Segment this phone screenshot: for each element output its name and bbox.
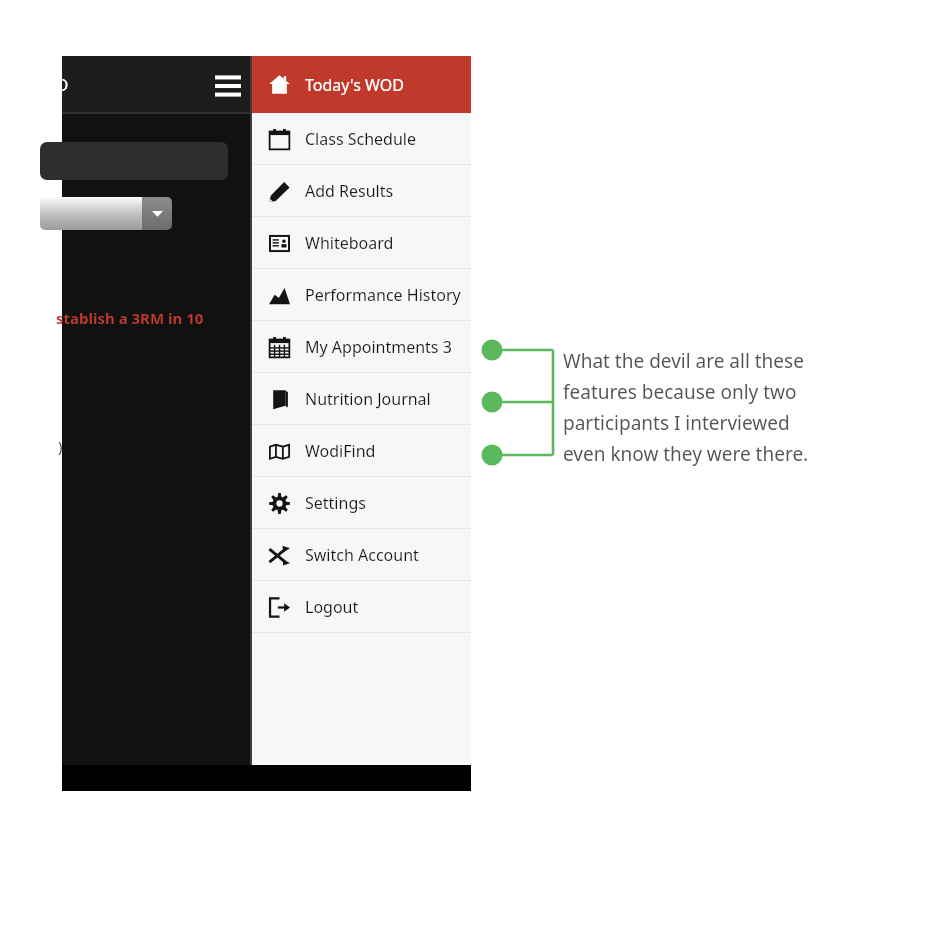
button[interactable]: WodiFind	[252, 425, 471, 477]
staticText: Performance History	[305, 284, 461, 306]
button[interactable]: Whiteboard	[252, 217, 471, 269]
button[interactable]: Add Results	[252, 165, 471, 217]
button[interactable]	[40, 142, 228, 180]
staticText: Class Schedule	[305, 128, 416, 150]
staticText: What the devil are all these features be…	[563, 348, 825, 467]
staticText: My Appointments 3	[305, 336, 452, 358]
staticText: Add Results	[305, 180, 394, 202]
staticText: Switch Account	[305, 544, 419, 566]
button[interactable]: Nutrition Journal	[252, 373, 471, 425]
staticText: D	[56, 73, 69, 96]
staticText: Logout	[305, 596, 359, 618]
button[interactable]: Class Schedule	[252, 113, 471, 165]
staticText: stablish a 3RM in 10	[56, 308, 204, 328]
staticText: )	[58, 436, 63, 456]
staticText: Nutrition Journal	[305, 388, 431, 410]
staticText: Settings	[305, 492, 366, 514]
button[interactable]: My Appointments 3	[252, 321, 471, 373]
button[interactable]: Today's WOD	[252, 56, 471, 113]
staticText: Today's WOD	[305, 74, 404, 96]
button[interactable]: Settings	[252, 477, 471, 529]
button[interactable]: Open navigation menu	[212, 68, 244, 100]
staticText: Whiteboard	[305, 232, 394, 254]
button[interactable]	[40, 197, 172, 230]
staticText: WodiFind	[305, 440, 376, 462]
button[interactable]: Logout	[252, 581, 471, 633]
button[interactable]: Switch Account	[252, 529, 471, 581]
button[interactable]: Performance History	[252, 269, 471, 321]
